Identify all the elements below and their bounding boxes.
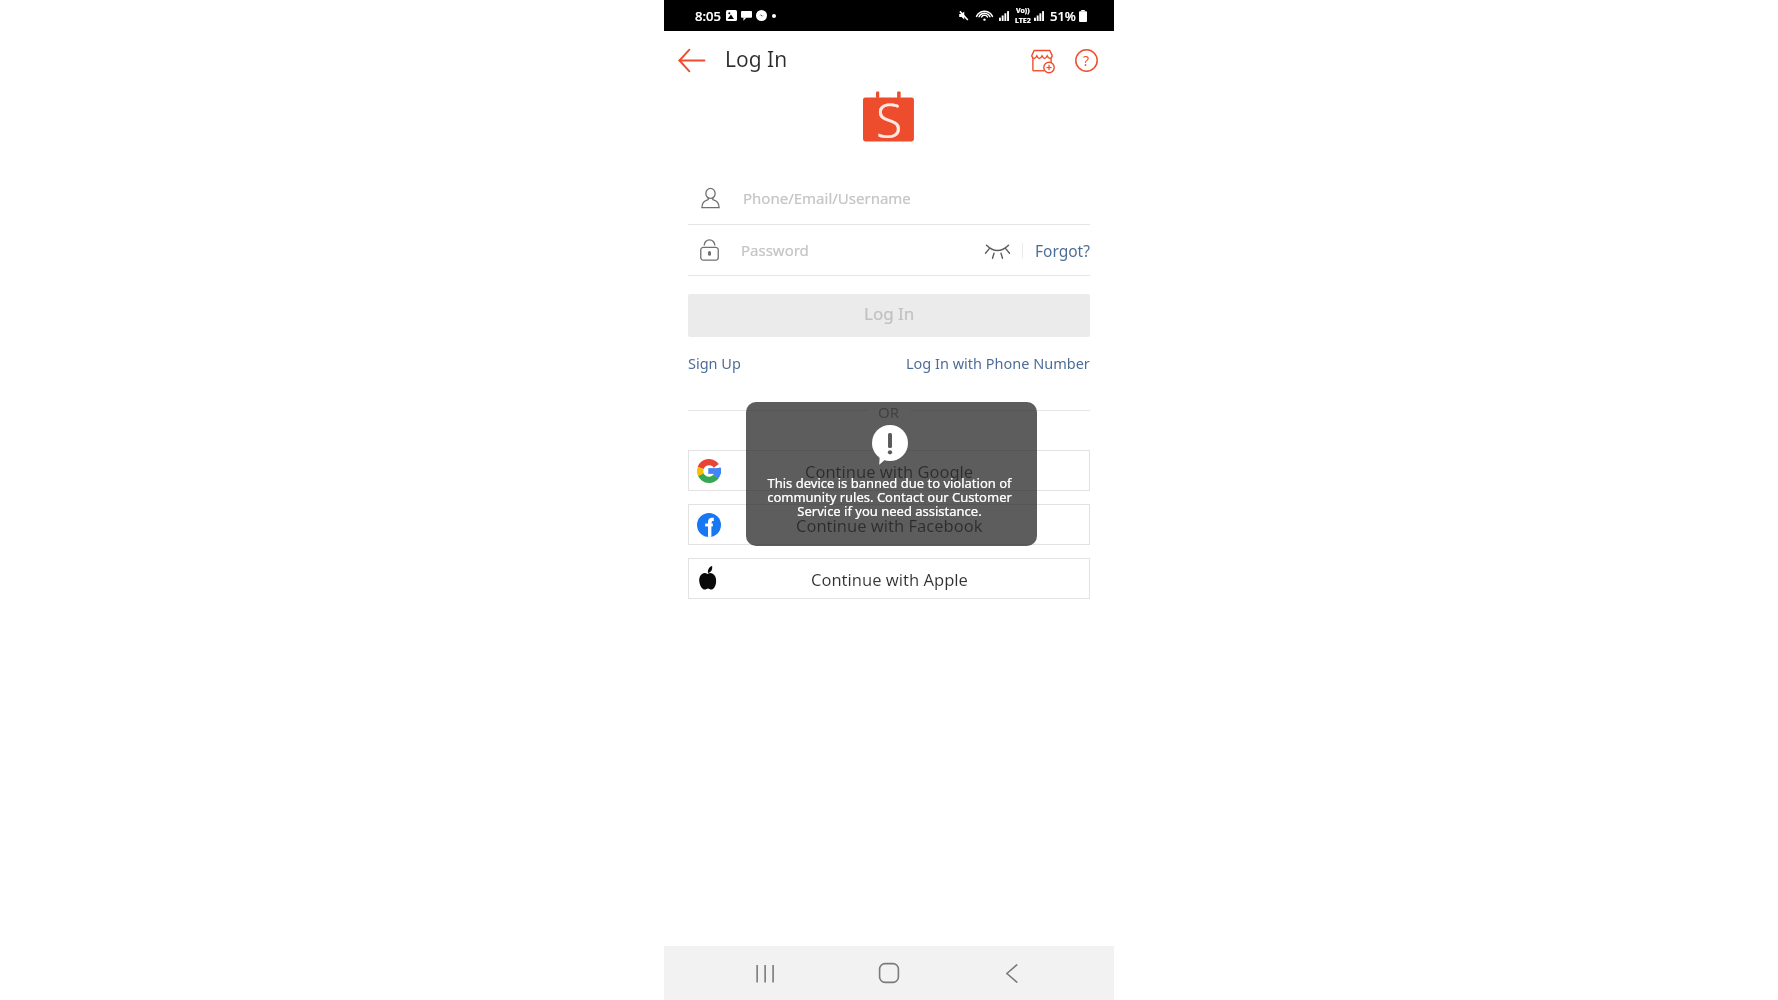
button[interactable]: Back <box>672 40 712 80</box>
button[interactable]: Continue with Google <box>688 450 1090 491</box>
staticText: This device is banned due to violation o… <box>767 474 1012 520</box>
staticText: Continue with Google <box>805 460 974 482</box>
button[interactable]: Forgot? <box>1035 240 1090 261</box>
staticText: Log In <box>864 302 915 325</box>
button[interactable]: Continue with Facebook <box>688 504 1090 545</box>
staticText: 51% <box>1050 7 1076 25</box>
staticText: 8:05 <box>695 7 721 25</box>
button[interactable]: Recents <box>741 949 789 997</box>
staticText: OR <box>878 402 900 418</box>
button[interactable]: Log In <box>688 294 1090 337</box>
button[interactable]: Log In with Phone Number <box>906 353 1090 373</box>
button[interactable]: Show password <box>982 235 1012 265</box>
button[interactable]: Continue with Apple <box>688 558 1090 599</box>
button[interactable]: Home <box>865 949 913 997</box>
staticText: ? <box>1083 51 1090 70</box>
staticText: Phone/Email/Username <box>743 188 911 208</box>
staticText: Forgot? <box>1035 240 1090 261</box>
button[interactable]: Shop <box>1023 41 1061 79</box>
staticText: Password <box>741 240 809 260</box>
staticText: Continue with Apple <box>811 568 968 590</box>
staticText: LTE2 <box>1015 16 1031 26</box>
staticText: Log In with Phone Number <box>906 353 1090 373</box>
staticText: Vo)) <box>1016 6 1030 16</box>
staticText: Log In <box>725 45 788 74</box>
button[interactable]: Sign Up <box>688 353 741 373</box>
staticText: Sign Up <box>688 353 741 373</box>
button[interactable]: Help <box>1067 41 1105 79</box>
button[interactable]: Back <box>990 949 1038 997</box>
staticText: S <box>876 87 903 139</box>
staticText: Continue with Facebook <box>796 514 983 536</box>
